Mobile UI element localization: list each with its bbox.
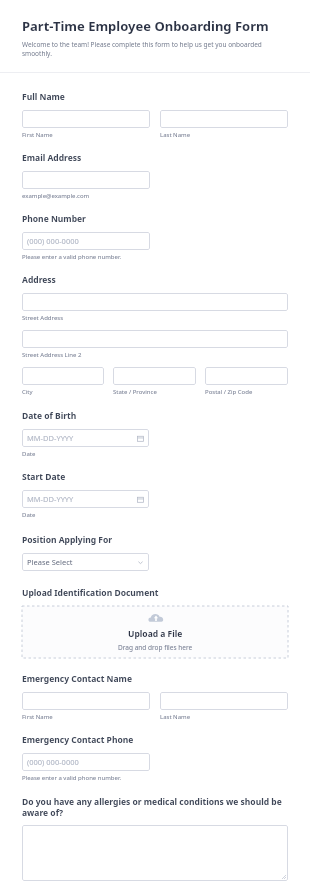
button[interactable]: (000) 000-0000 [22, 753, 150, 771]
staticText: Position Applying For [22, 534, 113, 546]
button[interactable] [205, 367, 288, 385]
button[interactable]: Upload a file [22, 606, 288, 658]
button[interactable] [22, 825, 288, 881]
staticText: Email Address [22, 152, 82, 164]
staticText: Welcome to the team! Please complete thi… [22, 40, 288, 58]
staticText: Drag and drop files here [118, 643, 193, 652]
staticText: Upload Identification Document [22, 587, 159, 599]
button[interactable] [22, 367, 104, 385]
staticText: Emergency Contact Phone [22, 734, 134, 746]
button[interactable] [22, 692, 150, 710]
staticText: Postal / Zip Code [205, 388, 253, 396]
staticText: Please enter a valid phone number. [22, 253, 122, 261]
staticText: Please Select [27, 557, 137, 567]
button[interactable]: Please Select [22, 553, 149, 571]
staticText: Do you have any allergies or medical con… [22, 796, 288, 818]
button[interactable] [22, 110, 150, 128]
staticText: MM-DD-YYYY [27, 494, 74, 504]
staticText: MM-DD-YYYY [27, 433, 74, 443]
staticText: First Name [22, 713, 53, 721]
staticText: Date [22, 511, 36, 519]
staticText: Start Date [22, 471, 66, 483]
button[interactable] [113, 367, 196, 385]
staticText: City [22, 388, 33, 396]
staticText: Street Address [22, 314, 64, 322]
button[interactable] [22, 293, 288, 311]
staticText: Street Address Line 2 [22, 351, 82, 359]
staticText: Phone Number [22, 213, 86, 225]
button[interactable] [22, 171, 150, 189]
staticText: Last Name [160, 713, 191, 721]
staticText: (000) 000-0000 [27, 236, 79, 246]
staticText: Part-Time Employee Onboarding Form [22, 17, 269, 35]
button[interactable] [160, 692, 288, 710]
staticText: Date [22, 450, 36, 458]
staticText: Full Name [22, 91, 65, 103]
staticText: example@example.com [22, 192, 90, 200]
staticText: Address [22, 274, 56, 286]
staticText: Date of Birth [22, 410, 77, 422]
button[interactable]: MM-DD-YYYY [22, 429, 149, 447]
staticText: Emergency Contact Name [22, 673, 132, 685]
staticText: First Name [22, 131, 53, 139]
staticText: Upload a File [128, 628, 183, 640]
button[interactable] [160, 110, 288, 128]
button[interactable] [22, 330, 288, 348]
button[interactable]: MM-DD-YYYY [22, 490, 149, 508]
staticText: Last Name [160, 131, 191, 139]
staticText: (000) 000-0000 [27, 757, 79, 767]
button[interactable]: (000) 000-0000 [22, 232, 150, 250]
staticText: Please enter a valid phone number. [22, 774, 122, 782]
staticText: State / Province [113, 388, 157, 396]
